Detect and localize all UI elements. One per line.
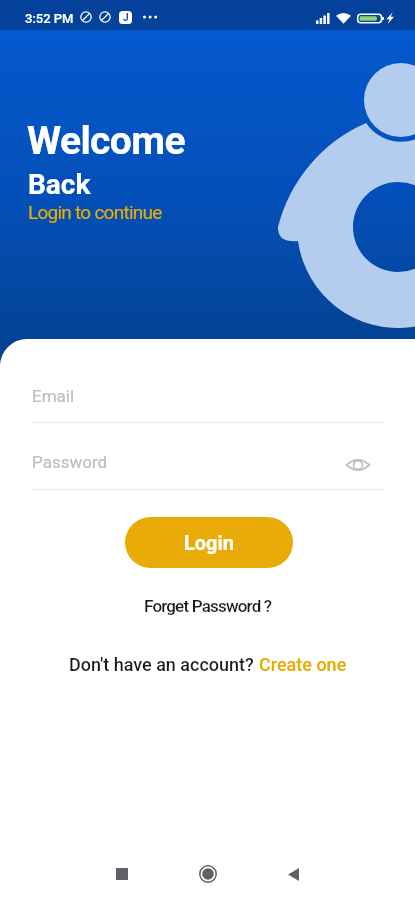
button[interactable]: Show password [345,452,371,478]
staticText: Don't have an account? [69,654,259,675]
staticText: 3:52 PM [25,11,74,26]
button[interactable]: Forget Password ? [136,592,280,620]
staticText: Create one [259,654,347,675]
button[interactable]: Recent apps [96,848,148,900]
button[interactable]: Home [182,848,234,900]
staticText: Forget Password ? [144,596,272,616]
staticText: Password [32,452,108,472]
staticText: Back [28,168,91,201]
staticText: Email [32,386,75,406]
button[interactable]: Back [267,848,319,900]
button[interactable]: Create one [259,654,347,675]
staticText: J [123,12,129,24]
staticText: Welcome [27,118,185,164]
button[interactable]: Login [125,517,293,568]
staticText: Login [184,531,235,554]
staticText: Login to continue [28,201,162,223]
